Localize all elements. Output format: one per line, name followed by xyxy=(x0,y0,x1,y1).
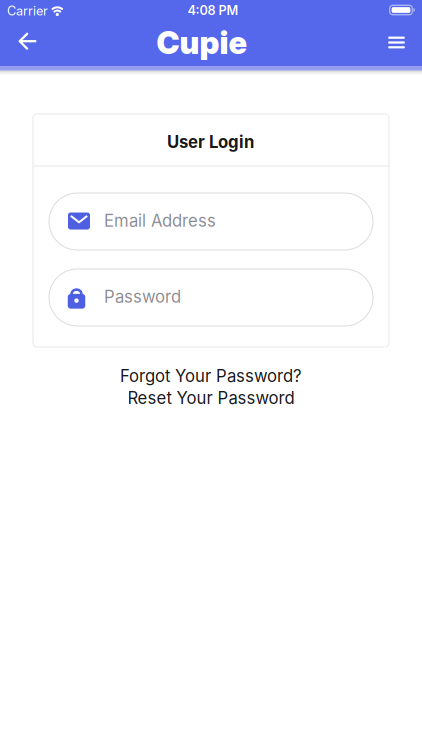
button[interactable]: Back xyxy=(6,21,48,61)
button[interactable]: Reset Your Password xyxy=(127,388,294,408)
button[interactable]: Email Address xyxy=(49,193,373,250)
button[interactable]: Forgot Your Password? xyxy=(120,366,302,386)
staticText: Carrier xyxy=(7,3,48,19)
staticText: Forgot Your Password? xyxy=(120,366,302,386)
staticText: Cupie xyxy=(156,24,247,61)
staticText: Password xyxy=(104,286,181,307)
staticText: Email Address xyxy=(104,210,216,231)
staticText: Reset Your Password xyxy=(127,388,294,408)
button[interactable]: Password xyxy=(49,269,373,326)
button[interactable]: Menu xyxy=(376,22,416,62)
staticText: 4:08 PM xyxy=(187,3,238,18)
staticText: User Login xyxy=(167,132,254,152)
